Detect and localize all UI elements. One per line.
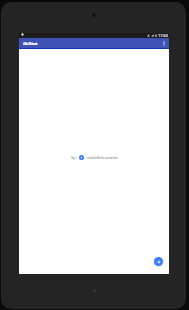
staticText: Tap xyxy=(71,155,76,160)
staticText: to add a file for conversion xyxy=(87,155,118,160)
staticText: 17:34 xyxy=(158,33,168,38)
staticText: Able2Extract xyxy=(23,41,37,46)
button[interactable]: More options xyxy=(158,38,169,49)
button[interactable]: Add file xyxy=(154,257,163,266)
